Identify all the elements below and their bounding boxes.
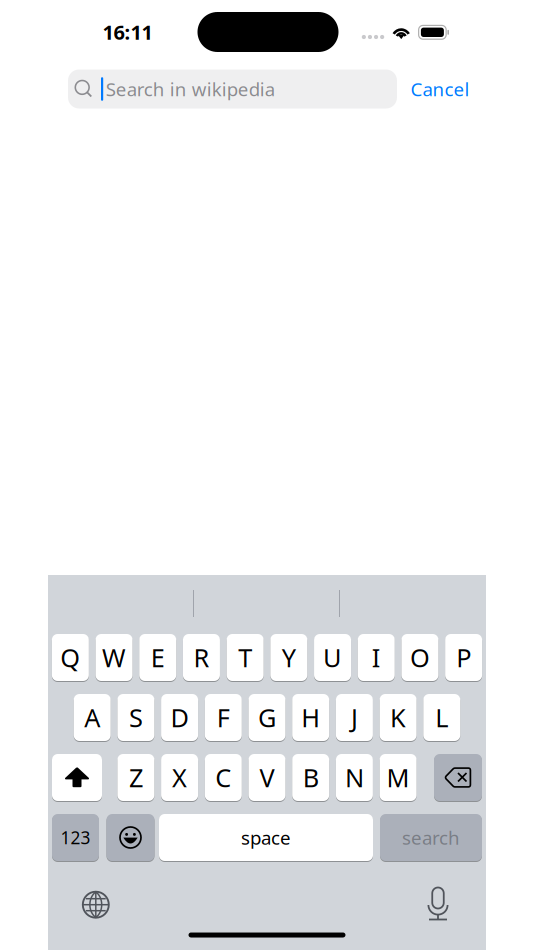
button[interactable]: Dictation xyxy=(424,886,452,920)
button[interactable]: J xyxy=(336,694,373,741)
staticText: N xyxy=(345,761,364,794)
button[interactable]: H xyxy=(292,694,329,741)
staticText: C xyxy=(215,761,231,794)
staticText: F xyxy=(217,701,230,734)
staticText: A xyxy=(84,701,100,734)
button[interactable]: L xyxy=(423,694,460,741)
button[interactable]: space xyxy=(159,814,373,861)
button[interactable]: Delete xyxy=(434,754,482,801)
staticText: Search in wikipedia xyxy=(106,77,275,101)
staticText: I xyxy=(372,641,381,674)
staticText: G xyxy=(258,701,276,734)
button[interactable]: B xyxy=(292,754,329,801)
button[interactable]: K xyxy=(380,694,417,741)
staticText: R xyxy=(193,641,209,674)
staticText: 16:11 xyxy=(102,19,152,45)
button[interactable]: E xyxy=(139,634,176,681)
button[interactable]: C xyxy=(205,754,242,801)
button[interactable]: Shift xyxy=(52,754,102,801)
button[interactable]: M xyxy=(380,754,417,801)
button[interactable]: X xyxy=(161,754,198,801)
staticText: L xyxy=(435,701,448,734)
staticText: X xyxy=(172,761,187,794)
staticText: J xyxy=(351,701,358,734)
button[interactable]: Z xyxy=(117,754,154,801)
button[interactable]: N xyxy=(336,754,373,801)
button[interactable]: Q xyxy=(52,634,89,681)
staticText: H xyxy=(301,701,320,734)
staticText: P xyxy=(456,641,471,674)
staticText: search xyxy=(402,825,460,850)
staticText: D xyxy=(171,701,189,734)
staticText: T xyxy=(238,641,252,674)
button[interactable]: G xyxy=(248,694,285,741)
staticText: K xyxy=(390,701,406,734)
button[interactable]: A xyxy=(74,694,111,741)
staticText: M xyxy=(387,761,410,794)
button[interactable]: D xyxy=(161,694,198,741)
button[interactable]: W xyxy=(95,634,132,681)
staticText: U xyxy=(323,641,342,674)
button[interactable]: Y xyxy=(270,634,307,681)
staticText: Y xyxy=(282,641,296,674)
button[interactable]: S xyxy=(117,694,154,741)
button[interactable]: U xyxy=(314,634,351,681)
staticText: space xyxy=(241,825,291,850)
button[interactable]: 123 xyxy=(52,814,99,861)
button[interactable]: search xyxy=(380,814,482,861)
button[interactable]: T xyxy=(227,634,264,681)
staticText: V xyxy=(259,761,274,794)
button[interactable]: I xyxy=(358,634,395,681)
staticText: O xyxy=(410,641,430,674)
staticText: Q xyxy=(60,641,80,674)
button[interactable]: V xyxy=(248,754,285,801)
button[interactable]: Emoji xyxy=(106,814,154,861)
staticText: Cancel xyxy=(410,77,469,101)
staticText: 123 xyxy=(60,826,90,849)
staticText: Z xyxy=(129,761,143,794)
button[interactable]: F xyxy=(205,694,242,741)
button[interactable]: O xyxy=(401,634,438,681)
button[interactable]: P xyxy=(445,634,482,681)
staticText: B xyxy=(303,761,319,794)
staticText: W xyxy=(102,641,126,674)
button[interactable]: R xyxy=(183,634,220,681)
button[interactable]: Switch keyboard xyxy=(82,891,109,918)
staticText: E xyxy=(151,641,165,674)
button[interactable]: Search in wikipedia xyxy=(68,69,397,108)
button[interactable]: Cancel xyxy=(394,69,486,108)
staticText: S xyxy=(129,701,143,734)
